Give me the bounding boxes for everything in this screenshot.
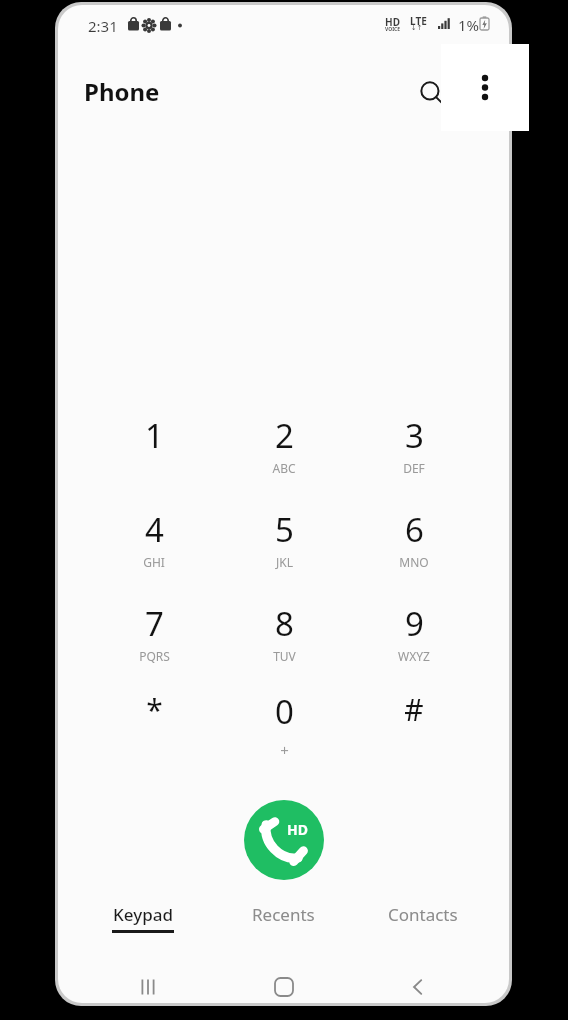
button[interactable]: 3: [366, 413, 462, 503]
staticText: MNO: [399, 554, 429, 570]
staticText: 8: [275, 601, 294, 646]
staticText: 0: [275, 689, 294, 734]
staticText: 1%: [458, 15, 480, 35]
button[interactable]: Recent apps: [118, 969, 178, 1003]
staticText: 6: [405, 507, 424, 552]
button[interactable]: Contacts: [353, 903, 493, 949]
staticText: DEF: [403, 460, 425, 476]
button[interactable]: Home: [254, 969, 314, 1003]
button[interactable]: #: [366, 689, 462, 779]
button[interactable]: 9: [366, 601, 462, 691]
button[interactable]: Call: [244, 800, 324, 880]
staticText: GHI: [143, 554, 165, 570]
staticText: HD: [385, 15, 400, 29]
button[interactable]: 6: [366, 507, 462, 597]
button[interactable]: 1: [106, 413, 202, 503]
staticText: HD: [287, 820, 308, 839]
staticText: +: [280, 740, 289, 760]
staticText: #: [404, 689, 424, 730]
staticText: VOICE: [385, 26, 401, 33]
staticText: PQRS: [139, 648, 170, 664]
button[interactable]: 5: [236, 507, 332, 597]
button[interactable]: Recents: [213, 903, 353, 949]
staticText: ↓↑: [411, 24, 423, 32]
staticText: ABC: [272, 460, 296, 476]
button[interactable]: More options: [441, 44, 529, 131]
button[interactable]: 7: [106, 601, 202, 691]
staticText: TUV: [273, 648, 296, 664]
staticText: 7: [145, 601, 164, 646]
staticText: Recents: [252, 903, 315, 926]
staticText: 1: [145, 413, 164, 458]
staticText: 5: [275, 507, 294, 552]
button[interactable]: 8: [236, 601, 332, 691]
staticText: LTE: [410, 14, 427, 28]
staticText: *: [146, 689, 163, 730]
staticText: 2:31: [88, 16, 118, 36]
staticText: Phone: [84, 75, 160, 108]
button[interactable]: 2: [236, 413, 332, 503]
staticText: Contacts: [388, 903, 458, 926]
staticText: 2: [275, 413, 294, 458]
staticText: JKL: [276, 554, 293, 570]
button[interactable]: Back: [388, 969, 448, 1003]
button[interactable]: *: [106, 689, 202, 779]
button[interactable]: 4: [106, 507, 202, 597]
button[interactable]: 0: [236, 689, 332, 779]
staticText: 9: [405, 601, 424, 646]
staticText: 4: [145, 507, 164, 552]
staticText: WXYZ: [398, 648, 430, 664]
staticText: Keypad: [113, 903, 173, 926]
staticText: 3: [405, 413, 424, 458]
button[interactable]: Search: [408, 69, 456, 117]
button[interactable]: Keypad: [73, 903, 213, 949]
